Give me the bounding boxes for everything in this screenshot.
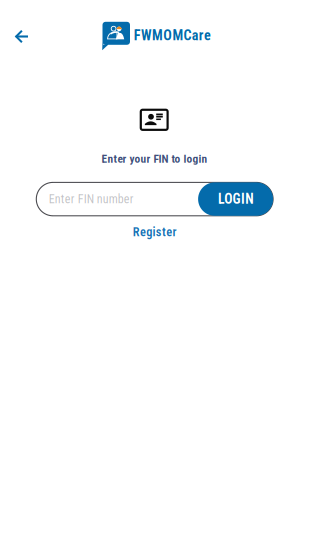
staticText: Enter FIN number bbox=[49, 192, 134, 206]
button[interactable]: Back bbox=[3, 18, 39, 54]
staticText: FWMOMCare bbox=[134, 27, 211, 44]
button[interactable]: LOGIN bbox=[198, 182, 273, 216]
staticText: LOGIN bbox=[218, 191, 253, 207]
staticText: Register bbox=[133, 225, 177, 239]
staticText: Enter your FIN to login bbox=[102, 152, 208, 165]
button[interactable]: Register bbox=[127, 222, 183, 242]
